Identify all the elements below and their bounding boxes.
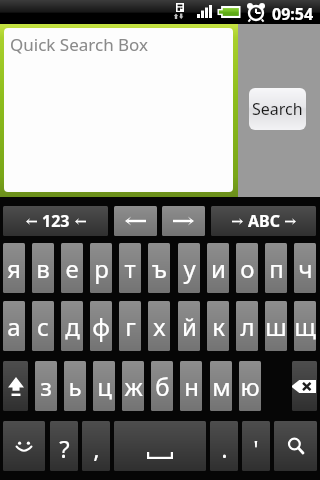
button[interactable]: б <box>151 361 173 411</box>
staticText: 09:54 <box>272 3 314 25</box>
staticText: ч <box>298 252 313 285</box>
staticText: ъ <box>152 252 167 285</box>
staticText: ' <box>253 432 259 465</box>
staticText: с <box>37 310 49 343</box>
button[interactable]: ъ <box>148 243 170 293</box>
button[interactable]: Emoji <box>3 421 45 471</box>
button[interactable]: ч <box>294 243 316 293</box>
staticText: Search <box>252 98 303 120</box>
button[interactable]: г <box>119 301 141 351</box>
button[interactable]: о <box>236 243 258 293</box>
button[interactable]: щ <box>294 301 316 351</box>
button[interactable]: Space <box>114 421 206 471</box>
staticText: а <box>7 310 21 343</box>
staticText: 123 <box>42 210 70 232</box>
button[interactable]: р <box>90 243 112 293</box>
staticText: ф <box>92 310 110 343</box>
button[interactable]: й <box>178 301 200 351</box>
button[interactable]: ' <box>242 421 270 471</box>
staticText: д <box>65 310 80 343</box>
staticText: , <box>93 432 100 465</box>
button[interactable]: к <box>207 301 229 351</box>
staticText: б <box>155 370 170 403</box>
other: Space <box>147 452 173 459</box>
button[interactable]: ю <box>239 361 261 411</box>
staticText: . <box>221 432 228 465</box>
button[interactable]: а <box>3 301 25 351</box>
staticText: й <box>182 310 197 343</box>
button[interactable]: е <box>61 243 83 293</box>
staticText: м <box>212 370 231 403</box>
staticText: ю <box>240 370 260 403</box>
button[interactable]: Search <box>249 88 306 130</box>
button[interactable]: т <box>119 243 141 293</box>
staticText: и <box>211 252 226 285</box>
staticText: е <box>65 252 79 285</box>
staticText: х <box>153 310 166 343</box>
button[interactable]: в <box>32 243 54 293</box>
button[interactable]: Shift <box>3 361 28 411</box>
staticText: ь <box>68 370 82 403</box>
other: Next <box>173 215 194 227</box>
staticText: р <box>94 252 109 285</box>
other: Shift <box>8 377 24 396</box>
button[interactable]: с <box>32 301 54 351</box>
button[interactable]: ф <box>90 301 112 351</box>
staticText: г <box>125 310 136 343</box>
button[interactable]: . <box>210 421 238 471</box>
button[interactable]: у <box>178 243 200 293</box>
staticText: л <box>240 310 255 343</box>
staticText: ABC <box>248 210 280 232</box>
button[interactable]: , <box>82 421 110 471</box>
button[interactable]: м <box>210 361 232 411</box>
button[interactable]: н <box>180 361 202 411</box>
staticText: з <box>40 370 52 403</box>
button[interactable]: ь <box>64 361 86 411</box>
button[interactable]: п <box>265 243 287 293</box>
staticText: н <box>184 370 199 403</box>
staticText: щ <box>294 310 316 343</box>
staticText: ц <box>97 370 112 403</box>
staticText: т <box>124 252 136 285</box>
button[interactable]: 123 <box>3 206 108 236</box>
staticText: я <box>7 252 21 285</box>
button[interactable]: ж <box>122 361 144 411</box>
other: Search <box>286 436 306 456</box>
button[interactable]: л <box>236 301 258 351</box>
button[interactable]: ц <box>93 361 115 411</box>
button[interactable]: Search <box>274 421 317 471</box>
button[interactable]: ш <box>265 301 287 351</box>
staticText: ? <box>59 432 70 465</box>
button[interactable]: Quick Search Box <box>4 28 233 192</box>
button[interactable]: Previous <box>114 206 157 236</box>
other: Backspace <box>292 380 316 393</box>
button[interactable]: з <box>35 361 57 411</box>
button[interactable]: я <box>3 243 25 293</box>
staticText: Quick Search Box <box>10 33 149 56</box>
button[interactable]: х <box>148 301 170 351</box>
button[interactable]: и <box>207 243 229 293</box>
button[interactable]: Backspace <box>292 361 317 411</box>
button[interactable]: ABC <box>211 206 316 236</box>
staticText: в <box>36 252 50 285</box>
button[interactable]: Next <box>162 206 205 236</box>
button[interactable]: д <box>61 301 83 351</box>
staticText: о <box>240 252 255 285</box>
staticText: п <box>269 252 284 285</box>
button[interactable]: ? <box>50 421 78 471</box>
other: Emoji <box>13 439 35 454</box>
other: Previous <box>125 215 146 227</box>
staticText: ш <box>265 310 287 343</box>
staticText: ж <box>124 370 143 403</box>
staticText: у <box>183 252 196 285</box>
staticText: к <box>212 310 225 343</box>
